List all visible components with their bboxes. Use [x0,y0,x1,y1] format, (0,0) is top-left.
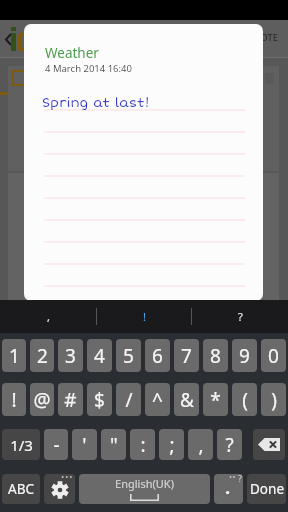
staticText: ? [225,432,234,458]
button[interactable]: 1 [2,339,26,372]
button[interactable]: * [203,383,228,416]
staticText: ) [271,387,277,413]
staticText: Spring at last! [42,95,150,111]
staticText: 9 [239,343,250,369]
staticText: 3 [65,343,76,369]
staticText: ! [143,309,146,324]
staticText: ' [82,432,87,458]
staticText: / [125,387,133,413]
button[interactable]: ' [72,429,97,460]
staticText: ; [169,432,175,458]
button[interactable]: , [188,429,213,460]
button[interactable]: ^ [145,383,170,416]
staticText: ABC [8,480,34,498]
staticText: : [140,432,146,458]
staticText: 5 [123,343,134,369]
button[interactable]: 4 [87,339,112,372]
button[interactable]: ( [232,383,257,416]
staticText: , [198,432,204,458]
staticText: 0 [268,343,279,369]
button[interactable]: 8 [203,339,228,372]
button[interactable]: 0 [261,339,286,372]
staticText: 7 [181,343,192,369]
button[interactable]: " [101,429,126,460]
staticText: ? [238,474,242,484]
button[interactable]: 5 [116,339,141,372]
button[interactable]: - [44,429,68,460]
staticText: 4 [94,343,105,369]
button[interactable]: ) [261,383,286,416]
staticText: 6 [152,343,163,369]
button[interactable]: , [0,300,96,333]
button[interactable]: 1/3 [2,429,40,460]
staticText: @ [33,387,51,413]
staticText: Weather [45,44,99,62]
button[interactable]: Weather [24,24,263,301]
staticText: " [110,432,118,458]
staticText: , [47,309,50,324]
button[interactable]: Backspace [253,429,285,460]
button[interactable]: 9 [232,339,257,372]
staticText: English(UK) [115,476,174,491]
button[interactable]: Done [247,474,286,504]
staticText: 1/3 [10,435,33,455]
button[interactable]: Back [1,29,15,50]
staticText: - [53,432,60,458]
button[interactable]: $ [87,383,112,416]
button[interactable]: ? [217,429,242,460]
staticText: ! [11,387,17,413]
button[interactable]: ; [159,429,184,460]
button[interactable]: English(UK) [79,474,210,504]
staticText: Done [250,480,284,498]
staticText: * [210,387,221,413]
staticText: 4 March 2014 16:40 [45,62,132,75]
button[interactable]: 6 [145,339,170,372]
button[interactable]: # [58,383,83,416]
staticText: $ [94,387,105,413]
button[interactable]: / [116,383,141,416]
staticText: 8 [210,343,221,369]
button[interactable]: Settings [44,474,75,504]
button[interactable]: & [174,383,199,416]
button[interactable]: ! [96,300,192,333]
button[interactable]: Punctuation [214,474,243,504]
staticText: 1 [9,343,20,369]
button[interactable]: : [130,429,155,460]
button[interactable]: 2 [30,339,54,372]
button[interactable]: ? [192,300,288,333]
button[interactable]: ABC [2,474,40,504]
staticText: ( [242,387,248,413]
staticText: 2 [37,343,48,369]
button[interactable]: @ [30,383,54,416]
staticText: # [64,387,77,413]
staticText: ^ [152,387,163,413]
button[interactable]: 3 [58,339,83,372]
button[interactable]: ! [2,383,26,416]
staticText: NOTE [253,31,278,44]
staticText: ? [238,309,243,324]
staticText: & [180,387,194,413]
button[interactable]: 7 [174,339,199,372]
